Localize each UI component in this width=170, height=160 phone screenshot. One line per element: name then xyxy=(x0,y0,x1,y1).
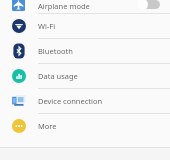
staticText: Airplane mode xyxy=(38,1,90,11)
staticText: Wi-Fi xyxy=(38,21,56,31)
staticText: Device connection xyxy=(38,96,103,106)
staticText: More xyxy=(38,121,57,131)
button[interactable]: Airplane mode xyxy=(0,0,170,13)
button[interactable]: More xyxy=(0,114,170,138)
button[interactable]: Wi-Fi xyxy=(0,14,170,38)
staticText: Bluetooth xyxy=(38,46,73,56)
button[interactable]: Airplane mode toggle xyxy=(137,0,161,10)
button[interactable]: Bluetooth xyxy=(0,39,170,63)
button[interactable]: Data usage xyxy=(0,64,170,88)
button[interactable]: Device connection xyxy=(0,89,170,113)
staticText: Data usage xyxy=(38,71,78,81)
